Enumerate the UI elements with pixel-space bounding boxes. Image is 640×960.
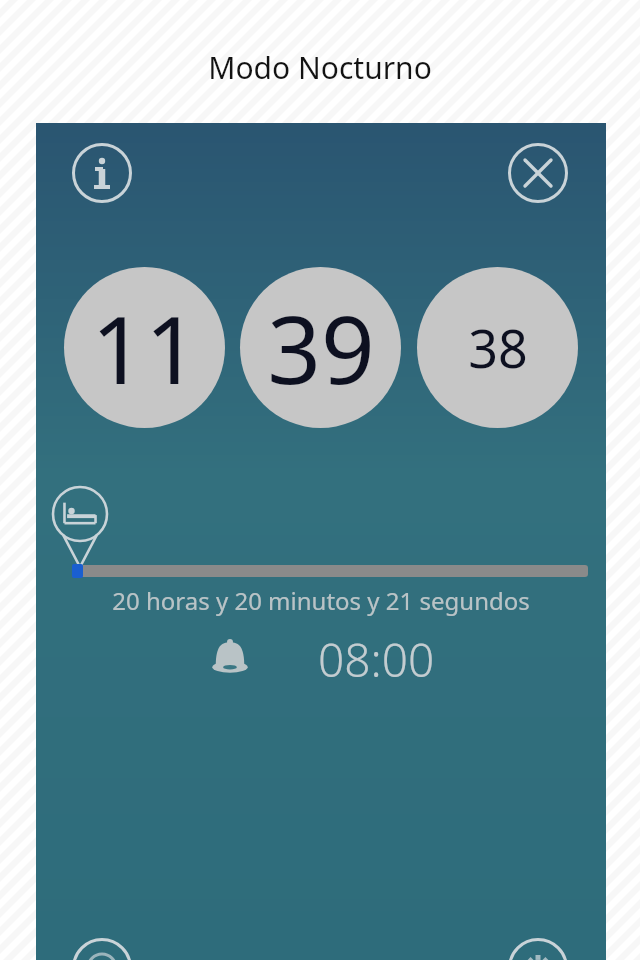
button[interactable]: 38 — [417, 267, 578, 428]
button[interactable]: History — [72, 938, 132, 960]
staticText: 08:00 — [318, 628, 435, 688]
button[interactable]: Settings — [508, 938, 568, 960]
staticText: 39 — [267, 284, 375, 412]
button[interactable]: Sleep duration slider — [72, 563, 588, 579]
button[interactable]: 39 — [240, 267, 401, 428]
staticText: Modo Nocturno — [208, 47, 432, 88]
staticText: 38 — [468, 312, 528, 383]
staticText: 11 — [91, 284, 199, 412]
button[interactable]: Close — [508, 143, 568, 203]
button[interactable]: 08:00 — [191, 628, 451, 688]
button[interactable]: 11 — [64, 267, 225, 428]
button[interactable]: Sleep time marker — [51, 485, 109, 569]
button[interactable]: Information — [72, 143, 132, 203]
staticText: 20 horas y 20 minutos y 21 segundos — [112, 584, 530, 617]
